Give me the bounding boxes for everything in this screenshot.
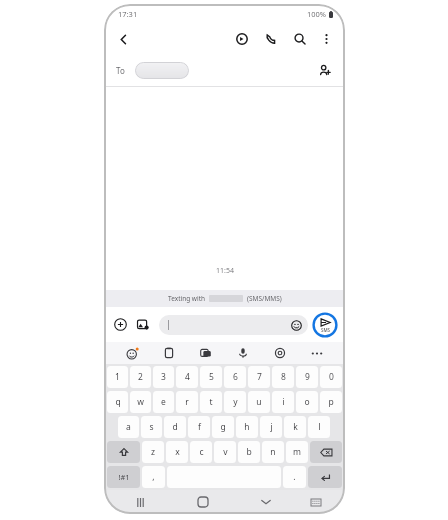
button[interactable]: p [320,391,342,413]
button[interactable]: , [142,466,165,488]
button[interactable]: GIF [197,344,215,362]
staticText: d [172,421,178,433]
button[interactable]: Voice input [234,344,252,362]
button[interactable]: a [118,416,139,438]
button[interactable]: l [308,416,330,438]
button[interactable]: Stickers [123,344,141,362]
button[interactable]: 0 [320,366,342,388]
button[interactable]: Backspace [310,441,342,463]
button[interactable]: More [308,344,326,362]
button[interactable]: Call [260,28,282,50]
button[interactable]: d [164,416,186,438]
staticText: 9 [305,371,310,383]
button[interactable]: Shift [107,441,140,463]
button[interactable]: 8 [272,366,294,388]
button[interactable]: Send SMS [312,312,338,338]
staticText: x [175,446,180,458]
button[interactable]: More options [316,29,336,49]
staticText: SMS [321,327,331,333]
button[interactable]: 6 [224,366,246,388]
button[interactable]: Back [112,28,134,50]
staticText: p [328,396,334,408]
button[interactable]: Add recipient [315,60,335,80]
button[interactable]: j [260,416,282,438]
staticText: 11:54 [216,266,234,276]
button[interactable]: x [166,441,188,463]
staticText: 3 [161,371,166,383]
staticText: 8 [281,371,286,383]
button[interactable]: Keyboard layout [306,492,326,512]
button[interactable]: 2 [130,366,151,388]
button[interactable]: Add attachment [111,315,130,334]
button[interactable]: w [130,391,151,413]
button[interactable]: 7 [248,366,270,388]
button[interactable]: 1 [107,366,128,388]
button[interactable]: Clipboard [160,344,178,362]
staticText: g [220,421,226,433]
button[interactable]: s [141,416,162,438]
button[interactable]: v [214,441,236,463]
button[interactable]: 5 [200,366,222,388]
staticText: t [209,396,213,408]
button[interactable]: m [286,441,308,463]
button[interactable]: Home [193,492,213,512]
staticText: l [318,421,321,433]
staticText: , [152,471,155,483]
staticText: 7 [257,371,262,383]
button[interactable]: z [142,441,164,463]
button[interactable]: b [238,441,260,463]
staticText: w [137,396,144,408]
button[interactable]: Enter [308,466,342,488]
button[interactable]: u [248,391,270,413]
button[interactable]: Gallery [134,315,153,334]
staticText: . [293,471,296,483]
button[interactable]: k [284,416,306,438]
staticText: m [293,446,301,458]
button[interactable]: 4 [176,366,198,388]
button[interactable]: q [107,391,128,413]
staticText: (SMS/MMS) [247,294,282,303]
button[interactable]: n [262,441,284,463]
staticText: 1 [115,371,120,383]
button[interactable]: f [188,416,210,438]
button[interactable]: 9 [296,366,318,388]
staticText: 0 [329,371,334,383]
button[interactable]: e [153,391,174,413]
button[interactable]: t [200,391,222,413]
staticText: 17:31 [118,9,138,19]
button[interactable]: !#1 [107,466,140,488]
button[interactable]: o [296,391,318,413]
button[interactable]: y [224,391,246,413]
staticText: Texting with [168,294,206,303]
button[interactable]: h [236,416,258,438]
button[interactable] [159,315,308,335]
button[interactable]: c [190,441,212,463]
staticText: 4 [185,371,190,383]
staticText: e [161,396,166,408]
button[interactable]: g [212,416,234,438]
button[interactable]: Hide keyboard [256,492,276,512]
button[interactable]: Video call [231,28,253,50]
staticText: i [282,396,285,408]
staticText: a [126,421,131,433]
button[interactable]: Settings [271,344,289,362]
button[interactable]: 3 [153,366,174,388]
staticText: To [116,65,125,76]
button[interactable]: i [272,391,294,413]
staticText: n [270,446,276,458]
staticText: v [223,446,228,458]
staticText: s [149,421,154,433]
button[interactable]: . [283,466,306,488]
staticText: b [246,446,252,458]
staticText: 2 [138,371,143,383]
staticText: h [244,421,250,433]
button[interactable]: Search [289,28,311,50]
button[interactable] [135,62,189,79]
staticText: j [270,421,273,433]
staticText: r [185,396,189,408]
staticText: o [304,396,310,408]
button[interactable]: r [176,391,198,413]
button[interactable]: Recents [130,492,150,512]
staticText: k [293,421,298,433]
